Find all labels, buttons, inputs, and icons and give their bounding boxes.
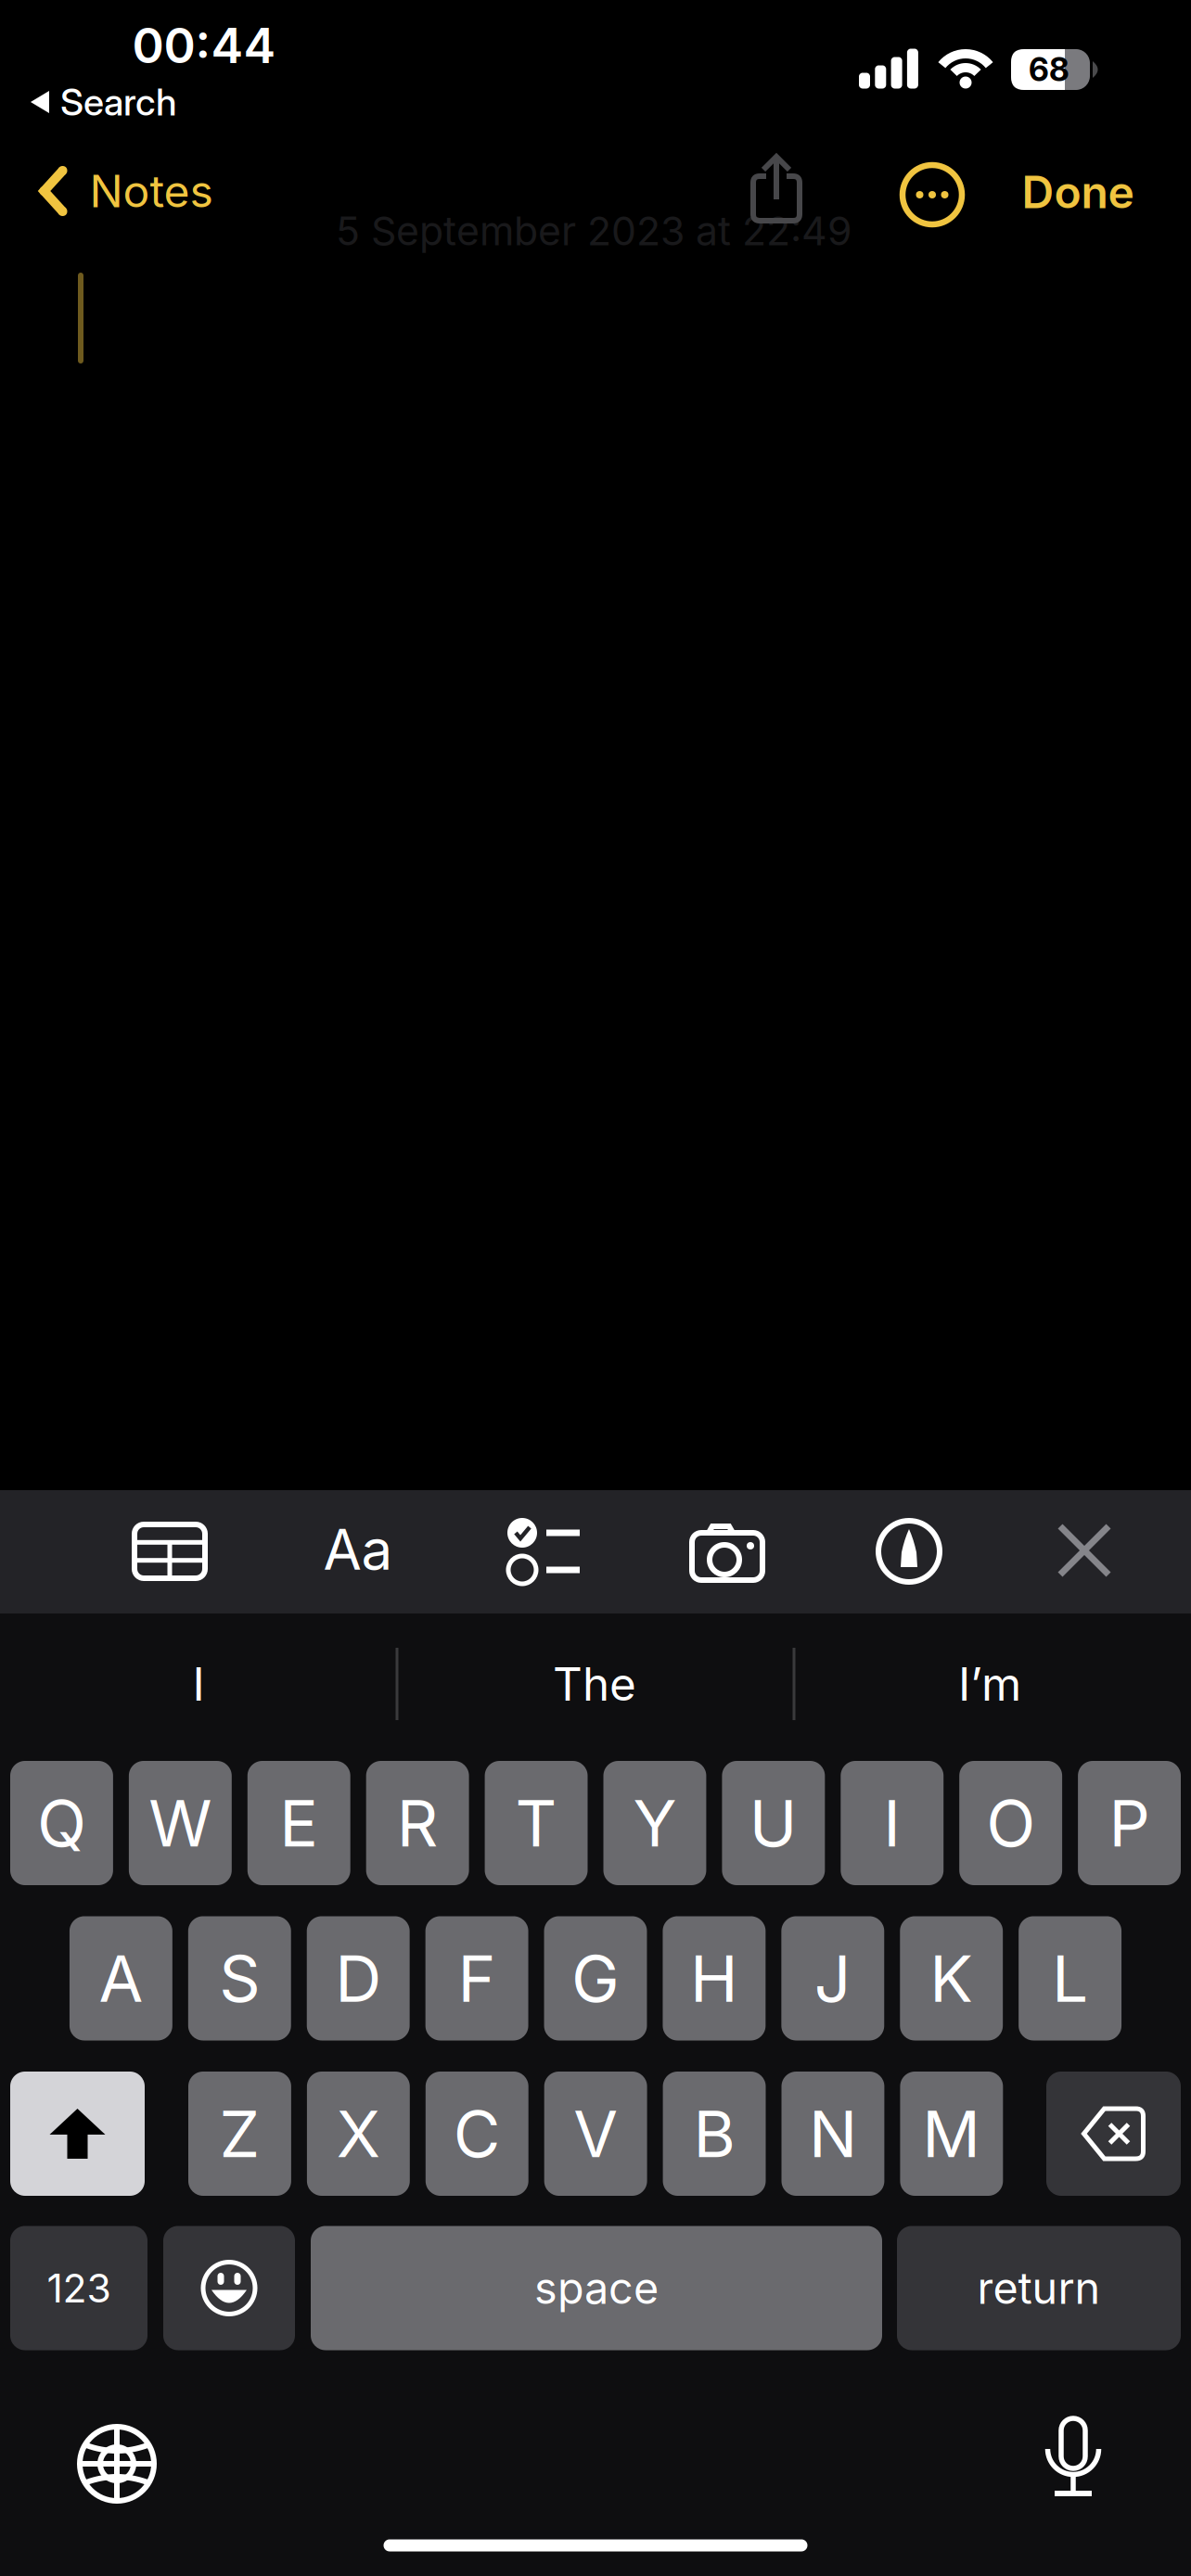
button[interactable]: V <box>544 2072 647 2196</box>
staticText: U <box>749 1785 798 1861</box>
button[interactable]: J <box>781 1916 884 2040</box>
staticText: N <box>809 2096 857 2172</box>
staticText: A <box>99 1940 143 2016</box>
button[interactable]: X <box>307 2072 410 2196</box>
staticText: Aa <box>323 1517 393 1582</box>
button[interactable]: D <box>307 1916 410 2040</box>
button[interactable]: P <box>1078 1761 1181 1885</box>
button[interactable]: T <box>485 1761 588 1885</box>
button[interactable]: Delete <box>1046 2072 1181 2196</box>
staticText: return <box>977 2263 1101 2314</box>
button[interactable]: Insert photo <box>690 1523 764 1580</box>
staticText: 5 September 2023 at 22:49 <box>336 208 852 254</box>
staticText: space <box>534 2263 659 2314</box>
button[interactable]: W <box>129 1761 232 1885</box>
button[interactable]: K <box>900 1916 1003 2040</box>
staticText: S <box>219 1940 260 2016</box>
staticText: P <box>1109 1785 1150 1861</box>
button[interactable]: Emoji <box>163 2226 295 2350</box>
staticText: W <box>149 1785 212 1861</box>
button[interactable]: Markup <box>877 1519 941 1584</box>
button[interactable]: C <box>426 2072 528 2196</box>
staticText: Search <box>60 80 177 124</box>
button[interactable]: Formatting <box>323 1517 393 1582</box>
staticText: Z <box>219 2096 260 2172</box>
button[interactable]: Y <box>603 1761 706 1885</box>
staticText: C <box>453 2096 501 2172</box>
button[interactable]: I’m <box>813 1633 1166 1735</box>
button[interactable]: A <box>70 1916 172 2040</box>
button[interactable]: return <box>897 2226 1181 2350</box>
button[interactable]: Z <box>188 2072 291 2196</box>
button[interactable]: U <box>722 1761 825 1885</box>
button[interactable]: R <box>366 1761 469 1885</box>
button[interactable]: 123 <box>10 2226 147 2350</box>
button[interactable]: E <box>247 1761 350 1885</box>
staticText: I <box>883 1785 901 1861</box>
staticText: V <box>573 2096 618 2172</box>
button[interactable]: S <box>188 1916 291 2040</box>
staticText: X <box>337 2096 380 2172</box>
button[interactable]: F <box>425 1916 528 2040</box>
button[interactable]: I <box>22 1633 375 1735</box>
staticText: I <box>192 1657 205 1711</box>
staticText: D <box>335 1940 381 2016</box>
button[interactable]: H <box>663 1916 766 2040</box>
staticText: Q <box>37 1785 86 1861</box>
staticText: H <box>690 1940 738 2016</box>
button[interactable]: Back to Search <box>31 80 177 124</box>
button[interactable]: Dictation <box>1045 2418 1101 2500</box>
staticText: T <box>515 1785 557 1861</box>
button[interactable]: Back to Notes <box>39 165 213 217</box>
button[interactable]: Q <box>10 1761 113 1885</box>
staticText: K <box>930 1940 973 2016</box>
button[interactable]: I <box>841 1761 944 1885</box>
button[interactable]: N <box>781 2072 884 2196</box>
button[interactable]: More <box>902 164 963 225</box>
staticText: I’m <box>958 1657 1021 1711</box>
staticText: 68 <box>1029 51 1069 89</box>
button[interactable]: B <box>663 2072 766 2196</box>
button[interactable]: Done <box>1022 166 1134 218</box>
button[interactable]: Dismiss keyboard <box>1059 1525 1109 1575</box>
staticText: F <box>458 1940 496 2016</box>
button[interactable]: Next keyboard <box>78 2425 156 2503</box>
staticText: The <box>553 1657 636 1711</box>
staticText: Y <box>633 1785 677 1861</box>
staticText: 00:44 <box>132 17 276 74</box>
button[interactable]: space <box>311 2226 882 2350</box>
button[interactable]: Share <box>750 155 802 223</box>
staticText: B <box>693 2096 735 2172</box>
staticText: E <box>279 1785 318 1861</box>
staticText: O <box>986 1785 1035 1861</box>
staticText: G <box>571 1940 620 2016</box>
button[interactable]: M <box>900 2072 1003 2196</box>
button[interactable]: O <box>959 1761 1062 1885</box>
button[interactable]: Shift <box>10 2072 145 2196</box>
button[interactable]: Checklist <box>506 1522 580 1579</box>
staticText: M <box>922 2096 981 2172</box>
staticText: L <box>1052 1940 1088 2016</box>
button[interactable]: L <box>1019 1916 1122 2040</box>
button[interactable]: The <box>418 1633 771 1735</box>
staticText: Notes <box>90 165 213 217</box>
staticText: J <box>814 1940 851 2016</box>
staticText: R <box>397 1785 438 1861</box>
staticText: Done <box>1022 166 1134 218</box>
staticText: 123 <box>47 2265 111 2311</box>
button[interactable]: Insert table <box>134 1524 206 1579</box>
button[interactable]: G <box>544 1916 647 2040</box>
